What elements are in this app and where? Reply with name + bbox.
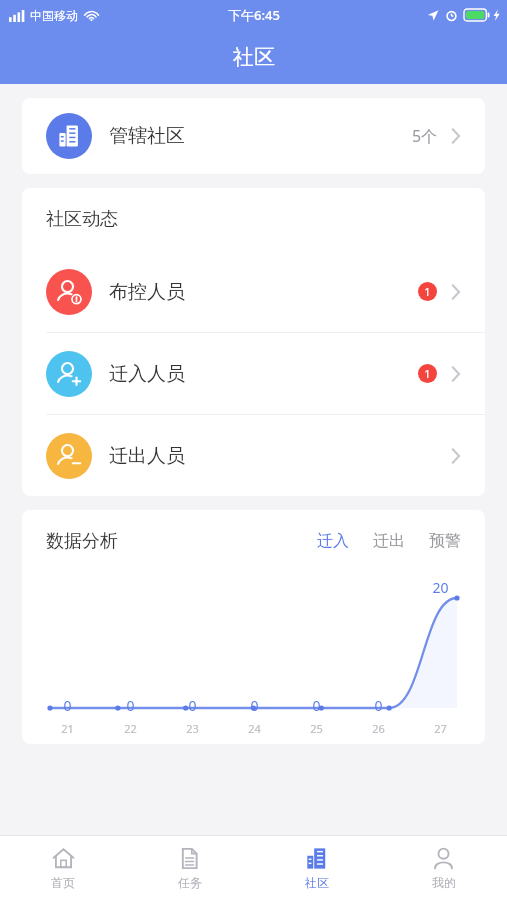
staticText: 26: [372, 721, 385, 736]
staticText: 管辖社区: [109, 124, 185, 148]
staticText: 0: [188, 696, 197, 715]
button[interactable]: 迁出人员: [22, 415, 485, 496]
button[interactable]: 预警: [423, 527, 467, 555]
button[interactable]: 迁入: [311, 527, 355, 555]
staticText: 迁出: [373, 531, 405, 551]
staticText: 预警: [429, 531, 461, 551]
staticText: 0: [63, 696, 72, 715]
staticText: 任务: [178, 875, 202, 890]
staticText: 下午6:45: [228, 6, 280, 24]
button[interactable]: 社区: [253, 836, 380, 900]
staticText: 24: [248, 721, 261, 736]
staticText: 20: [432, 578, 449, 597]
staticText: 1: [424, 284, 431, 299]
button[interactable]: 迁入人员: [22, 333, 485, 414]
staticText: 27: [434, 721, 447, 736]
staticText: 社区动态: [46, 208, 118, 231]
staticText: 首页: [51, 875, 75, 890]
staticText: 社区: [233, 44, 275, 70]
button[interactable]: 我的: [380, 836, 507, 900]
staticText: 社区: [305, 875, 329, 890]
staticText: 1: [424, 366, 431, 381]
staticText: 迁出人员: [109, 444, 185, 468]
staticText: 0: [126, 696, 135, 715]
staticText: 25: [310, 721, 323, 736]
staticText: 我的: [432, 875, 456, 890]
staticText: 21: [61, 721, 74, 736]
staticText: 0: [374, 696, 383, 715]
button[interactable]: 布控人员: [22, 251, 485, 332]
button[interactable]: 任务: [126, 836, 253, 900]
staticText: 迁入: [317, 531, 349, 551]
staticText: 中国移动: [30, 8, 78, 23]
staticText: 布控人员: [109, 280, 185, 304]
staticText: 23: [186, 721, 199, 736]
button[interactable]: 首页: [0, 836, 126, 900]
staticText: 数据分析: [46, 530, 118, 553]
staticText: 迁入人员: [109, 362, 185, 386]
button[interactable]: 迁出: [367, 527, 411, 555]
staticText: 22: [124, 721, 137, 736]
staticText: 0: [250, 696, 259, 715]
staticText: 5个: [412, 125, 438, 147]
button[interactable]: 管辖社区: [22, 98, 485, 174]
staticText: 0: [312, 696, 321, 715]
